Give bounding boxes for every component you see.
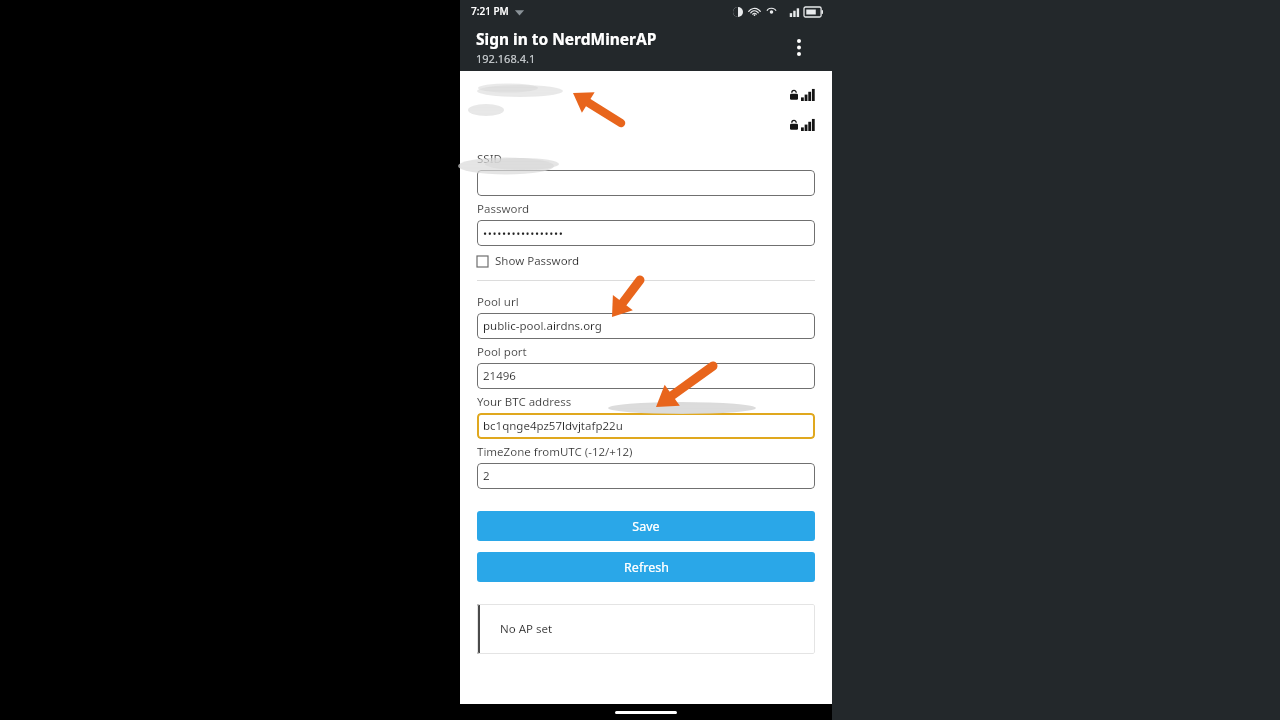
button[interactable] bbox=[477, 117, 815, 133]
staticText: bc1qnge4pz57ldvjtafp22u bbox=[483, 418, 623, 434]
staticText: Password bbox=[477, 201, 530, 217]
staticText: TimeZone fromUTC (-12/+12) bbox=[477, 444, 633, 460]
staticText: Save bbox=[632, 518, 660, 535]
button[interactable]: 21496 bbox=[477, 363, 815, 389]
button[interactable] bbox=[477, 87, 815, 103]
button[interactable]: bc1qnge4pz57ldvjtafp22u bbox=[477, 413, 815, 439]
staticText: public-pool.airdns.org bbox=[483, 318, 602, 334]
staticText: SSID bbox=[477, 151, 502, 167]
button[interactable]: public-pool.airdns.org bbox=[477, 313, 815, 339]
staticText: Show Password bbox=[495, 253, 580, 269]
button[interactable]: Save bbox=[477, 511, 815, 541]
staticText: ••••••••••••••••• bbox=[483, 226, 564, 241]
button[interactable]: Refresh bbox=[477, 552, 815, 582]
button[interactable]: More options bbox=[786, 34, 812, 60]
staticText: Your BTC address bbox=[477, 394, 572, 410]
staticText: 192.168.4.1 bbox=[476, 51, 536, 66]
staticText: Pool port bbox=[477, 344, 527, 360]
staticText: 2 bbox=[483, 468, 490, 484]
button[interactable]: 2 bbox=[477, 463, 815, 489]
button[interactable]: ••••••••••••••••• bbox=[477, 220, 815, 246]
button[interactable] bbox=[477, 170, 815, 196]
button[interactable]: Show Password bbox=[477, 253, 580, 269]
staticText: No AP set bbox=[500, 621, 553, 637]
staticText: Sign in to NerdMinerAP bbox=[476, 28, 657, 49]
staticText: 7:21 PM bbox=[471, 4, 509, 18]
staticText: Refresh bbox=[624, 559, 669, 576]
staticText: Pool url bbox=[477, 294, 519, 310]
staticText: 21496 bbox=[483, 368, 516, 384]
